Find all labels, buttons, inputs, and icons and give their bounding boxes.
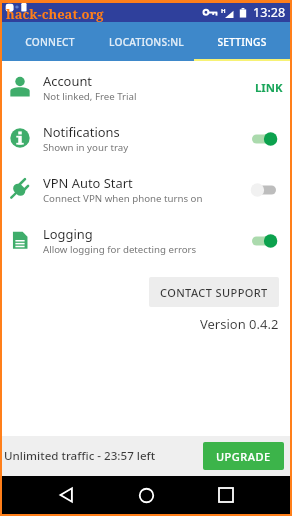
staticText: hack-cheat.org [6,5,104,22]
staticText: Logging [43,225,93,243]
staticText: Account [43,72,92,90]
button[interactable]: Recent apps [186,476,266,514]
staticText: H [221,7,226,15]
staticText: Version 0.4.2 [200,315,279,333]
staticText: LOCATIONS:NL [109,35,184,49]
button[interactable]: CONNECT [2,22,98,61]
staticText: Not linked, Free Trial [43,90,137,103]
staticText: CONNECT [25,35,75,49]
button[interactable]: Back [26,476,106,514]
staticText: VPN Auto Start [43,174,133,192]
staticText: Unlimited traffic - 23:57 left [4,448,156,464]
button[interactable]: Logging [2,215,290,266]
staticText: UPGRADE [216,449,271,464]
button[interactable]: Toggle off [245,175,283,205]
button[interactable]: Toggle on [245,226,283,256]
staticText: LINK [255,80,283,96]
staticText: CONTACT SUPPORT [160,285,268,300]
staticText: SETTINGS [217,35,267,49]
button[interactable]: Account [2,62,290,113]
staticText: Allow logging for detecting errors [43,243,197,256]
button[interactable]: CONTACT SUPPORT [149,277,279,307]
button[interactable]: LINK [247,74,283,102]
button[interactable]: Notifications [2,113,290,164]
button[interactable]: Home [106,476,186,514]
staticText: 13:28 [253,4,286,21]
button[interactable]: Toggle on [245,124,283,154]
staticText: Notifications [43,123,120,141]
button[interactable]: VPN Auto Start [2,164,290,215]
staticText: Connect VPN when phone turns on [43,192,203,205]
button[interactable]: LOCATIONS:NL [98,22,194,61]
staticText: Shown in your tray [43,141,129,154]
button[interactable]: SETTINGS [194,22,290,61]
button[interactable]: UPGRADE [203,442,284,470]
